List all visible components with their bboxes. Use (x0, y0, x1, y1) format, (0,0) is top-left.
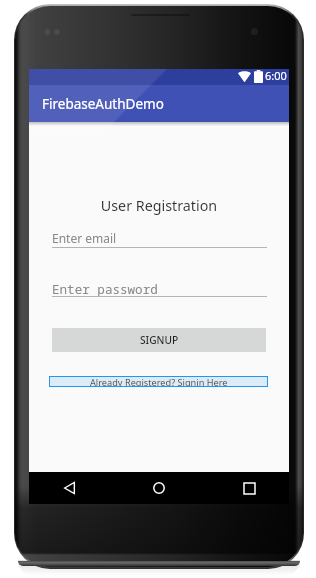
button[interactable]: Home (141, 472, 177, 504)
button[interactable]: Recent apps (231, 472, 267, 504)
staticText: 6:00 (265, 68, 287, 83)
button[interactable]: SIGNUP (52, 328, 266, 352)
staticText: SIGNUP (140, 333, 179, 347)
button[interactable]: Back (51, 472, 87, 504)
staticText: Enter email (52, 230, 117, 246)
staticText: FirebaseAuthDemo (42, 95, 164, 113)
staticText: Already Registered? Signin Here (90, 376, 228, 387)
staticText: User Registration (29, 196, 289, 215)
staticText: Enter password (52, 281, 158, 298)
button[interactable]: Already Registered? Signin Here (49, 376, 268, 387)
